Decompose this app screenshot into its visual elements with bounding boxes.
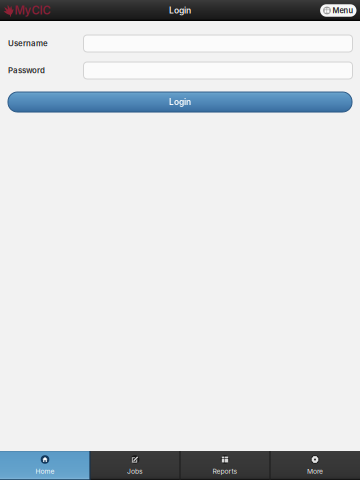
staticText: Menu — [332, 6, 353, 15]
staticText: Login — [169, 5, 191, 16]
button[interactable]: More — [270, 451, 360, 480]
staticText: Password — [8, 66, 45, 75]
button[interactable]: Jobs — [90, 451, 180, 480]
button[interactable]: Menu — [320, 4, 356, 17]
button[interactable] — [83, 35, 352, 52]
button[interactable]: Reports — [180, 451, 270, 480]
staticText: Username — [8, 39, 48, 48]
button[interactable]: Home — [0, 451, 90, 480]
staticText: Home — [35, 467, 54, 475]
staticText: Login — [169, 97, 191, 107]
button[interactable] — [83, 62, 352, 79]
staticText: Reports — [212, 467, 237, 475]
staticText: More — [307, 467, 323, 475]
button[interactable]: Login — [8, 92, 352, 112]
staticText: Jobs — [127, 467, 143, 475]
staticText: MyCIC — [14, 4, 50, 17]
